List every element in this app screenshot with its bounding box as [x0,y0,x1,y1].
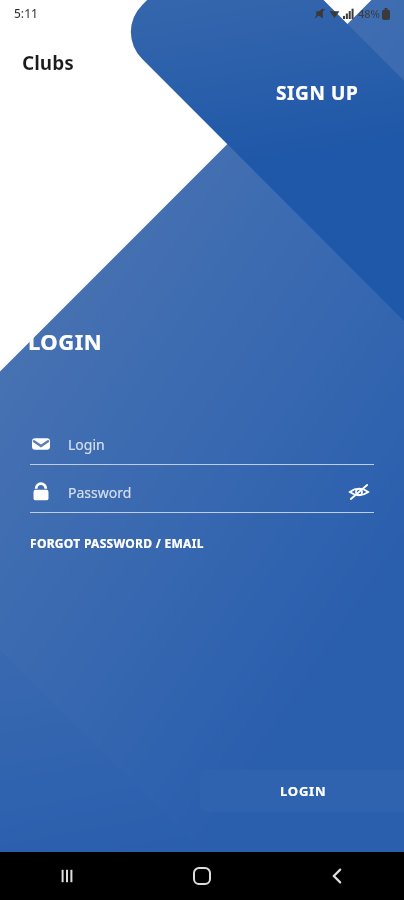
staticText: Clubs [22,50,74,76]
button[interactable]: Show password [344,477,374,507]
staticText: LOGIN [28,326,103,356]
staticText: 48% [358,6,380,21]
button[interactable]: SIGN UP [252,70,382,116]
button[interactable]: Home [134,852,269,900]
staticText: FORGOT PASSWORD / EMAIL [30,535,204,551]
button[interactable]: Login [30,424,374,464]
button[interactable]: FORGOT PASSWORD / EMAIL [30,535,204,551]
staticText: Login [68,435,105,454]
button[interactable]: Recents [0,852,134,900]
staticText: 5:11 [14,5,38,21]
button[interactable]: LOGIN [200,770,404,812]
button[interactable]: Back [269,852,404,900]
staticText: Password [68,483,132,502]
staticText: LOGIN [280,782,327,800]
staticText: SIGN UP [276,80,359,106]
button[interactable]: Password [30,472,374,512]
